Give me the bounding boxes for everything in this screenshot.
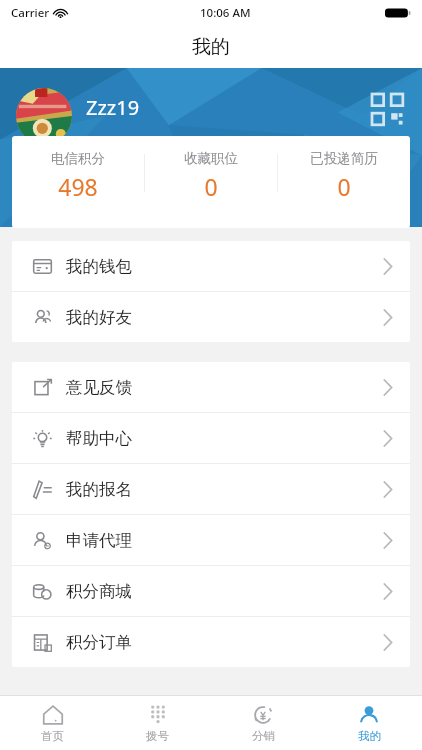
button[interactable]: 意见反馈 [12, 362, 410, 412]
staticText: 收藏职位 [184, 150, 238, 167]
button[interactable]: 首页 [0, 696, 105, 750]
staticText: 我的 [192, 35, 230, 59]
staticText: 你还有32408抽奖次数 [78, 150, 217, 169]
staticText: 分销 [252, 729, 275, 743]
staticText: Carrier [11, 5, 50, 21]
button[interactable]: 拨号 [105, 696, 210, 750]
staticText: 积分订单 [66, 632, 132, 653]
staticText: 我的好友 [66, 307, 132, 328]
staticText: 0 [337, 171, 351, 202]
staticText: 拨号 [146, 729, 169, 743]
staticText: 已投递简历 [310, 150, 378, 167]
button[interactable]: 电信积分 [12, 150, 144, 202]
staticText: 积分商城 [66, 581, 132, 602]
staticText: 10:06 AM [200, 5, 251, 21]
button[interactable]: 积分商城 [12, 566, 410, 616]
button[interactable]: 分销 [210, 696, 316, 750]
button[interactable]: 收藏职位 [145, 150, 277, 202]
button[interactable]: 申请代理 [12, 515, 410, 565]
staticText: 我的钱包 [66, 256, 132, 277]
button[interactable]: 已投递简历 [278, 150, 410, 202]
staticText: 我的报名 [66, 479, 132, 500]
staticText: 0 [204, 171, 218, 202]
button[interactable]: 帮助中心 [12, 413, 410, 463]
button[interactable]: 我的 [316, 696, 422, 750]
staticText: 首页 [41, 729, 64, 743]
staticText: 电信积分 [51, 150, 105, 167]
staticText: 帮助中心 [66, 428, 132, 449]
button[interactable]: 我的报名 [12, 464, 410, 514]
staticText: 意见反馈 [66, 377, 132, 398]
staticText: 申请代理 [66, 530, 132, 551]
button[interactable]: 我的钱包 [12, 241, 410, 291]
button[interactable]: QR code [370, 92, 406, 128]
button[interactable]: 积分订单 [12, 617, 410, 667]
staticText: Zzz19 [86, 94, 140, 121]
button[interactable]: 我的好友 [12, 292, 410, 342]
staticText: 498 [58, 171, 98, 202]
staticText: 我的 [358, 729, 381, 743]
